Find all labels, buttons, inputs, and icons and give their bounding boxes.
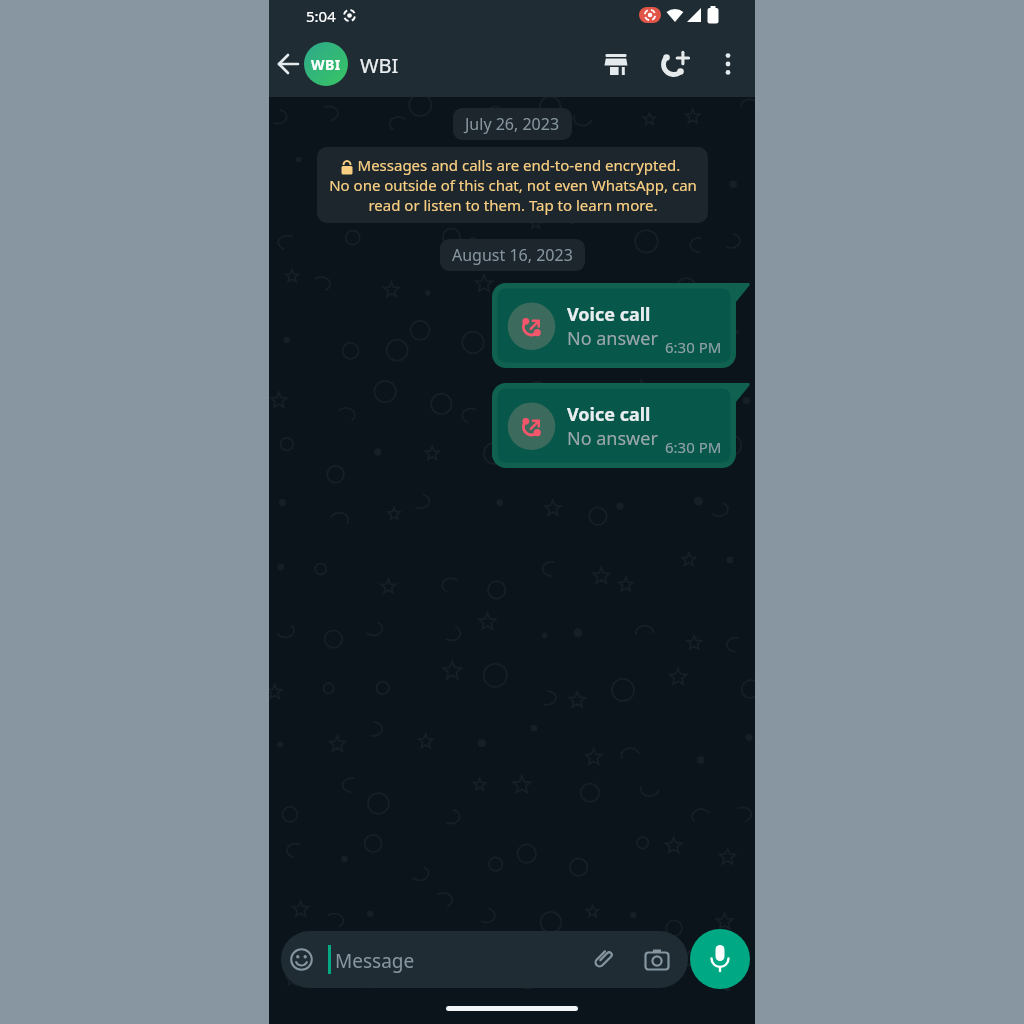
button[interactable]: Voice call bbox=[492, 383, 754, 469]
button[interactable] bbox=[690, 929, 750, 989]
button[interactable] bbox=[589, 946, 616, 973]
button[interactable] bbox=[290, 948, 313, 971]
button[interactable] bbox=[660, 51, 690, 77]
staticText: No answer bbox=[567, 426, 658, 451]
staticText: 5:04 bbox=[306, 6, 336, 26]
button[interactable] bbox=[277, 53, 301, 75]
staticText: No answer bbox=[567, 326, 658, 351]
staticText: 6:30 PM bbox=[665, 437, 722, 457]
button[interactable] bbox=[605, 54, 629, 75]
staticText: August 16, 2023 bbox=[452, 244, 573, 266]
button[interactable]: WBI bbox=[304, 42, 348, 86]
button[interactable]: Messages and calls are end-to-end encryp… bbox=[317, 155, 708, 215]
staticText: Voice call bbox=[567, 402, 651, 427]
staticText: WBI bbox=[311, 55, 341, 74]
staticText: Message bbox=[335, 948, 415, 974]
button[interactable]: WBI bbox=[360, 52, 399, 79]
staticText: Messages and calls are end-to-end encryp… bbox=[329, 155, 697, 215]
button[interactable] bbox=[721, 52, 735, 76]
staticText: Voice call bbox=[567, 302, 651, 327]
staticText: July 26, 2023 bbox=[465, 113, 560, 135]
staticText: 6:30 PM bbox=[665, 337, 722, 357]
button[interactable]: Message bbox=[281, 931, 688, 988]
button[interactable] bbox=[645, 949, 669, 970]
button[interactable]: Voice call bbox=[492, 283, 754, 369]
